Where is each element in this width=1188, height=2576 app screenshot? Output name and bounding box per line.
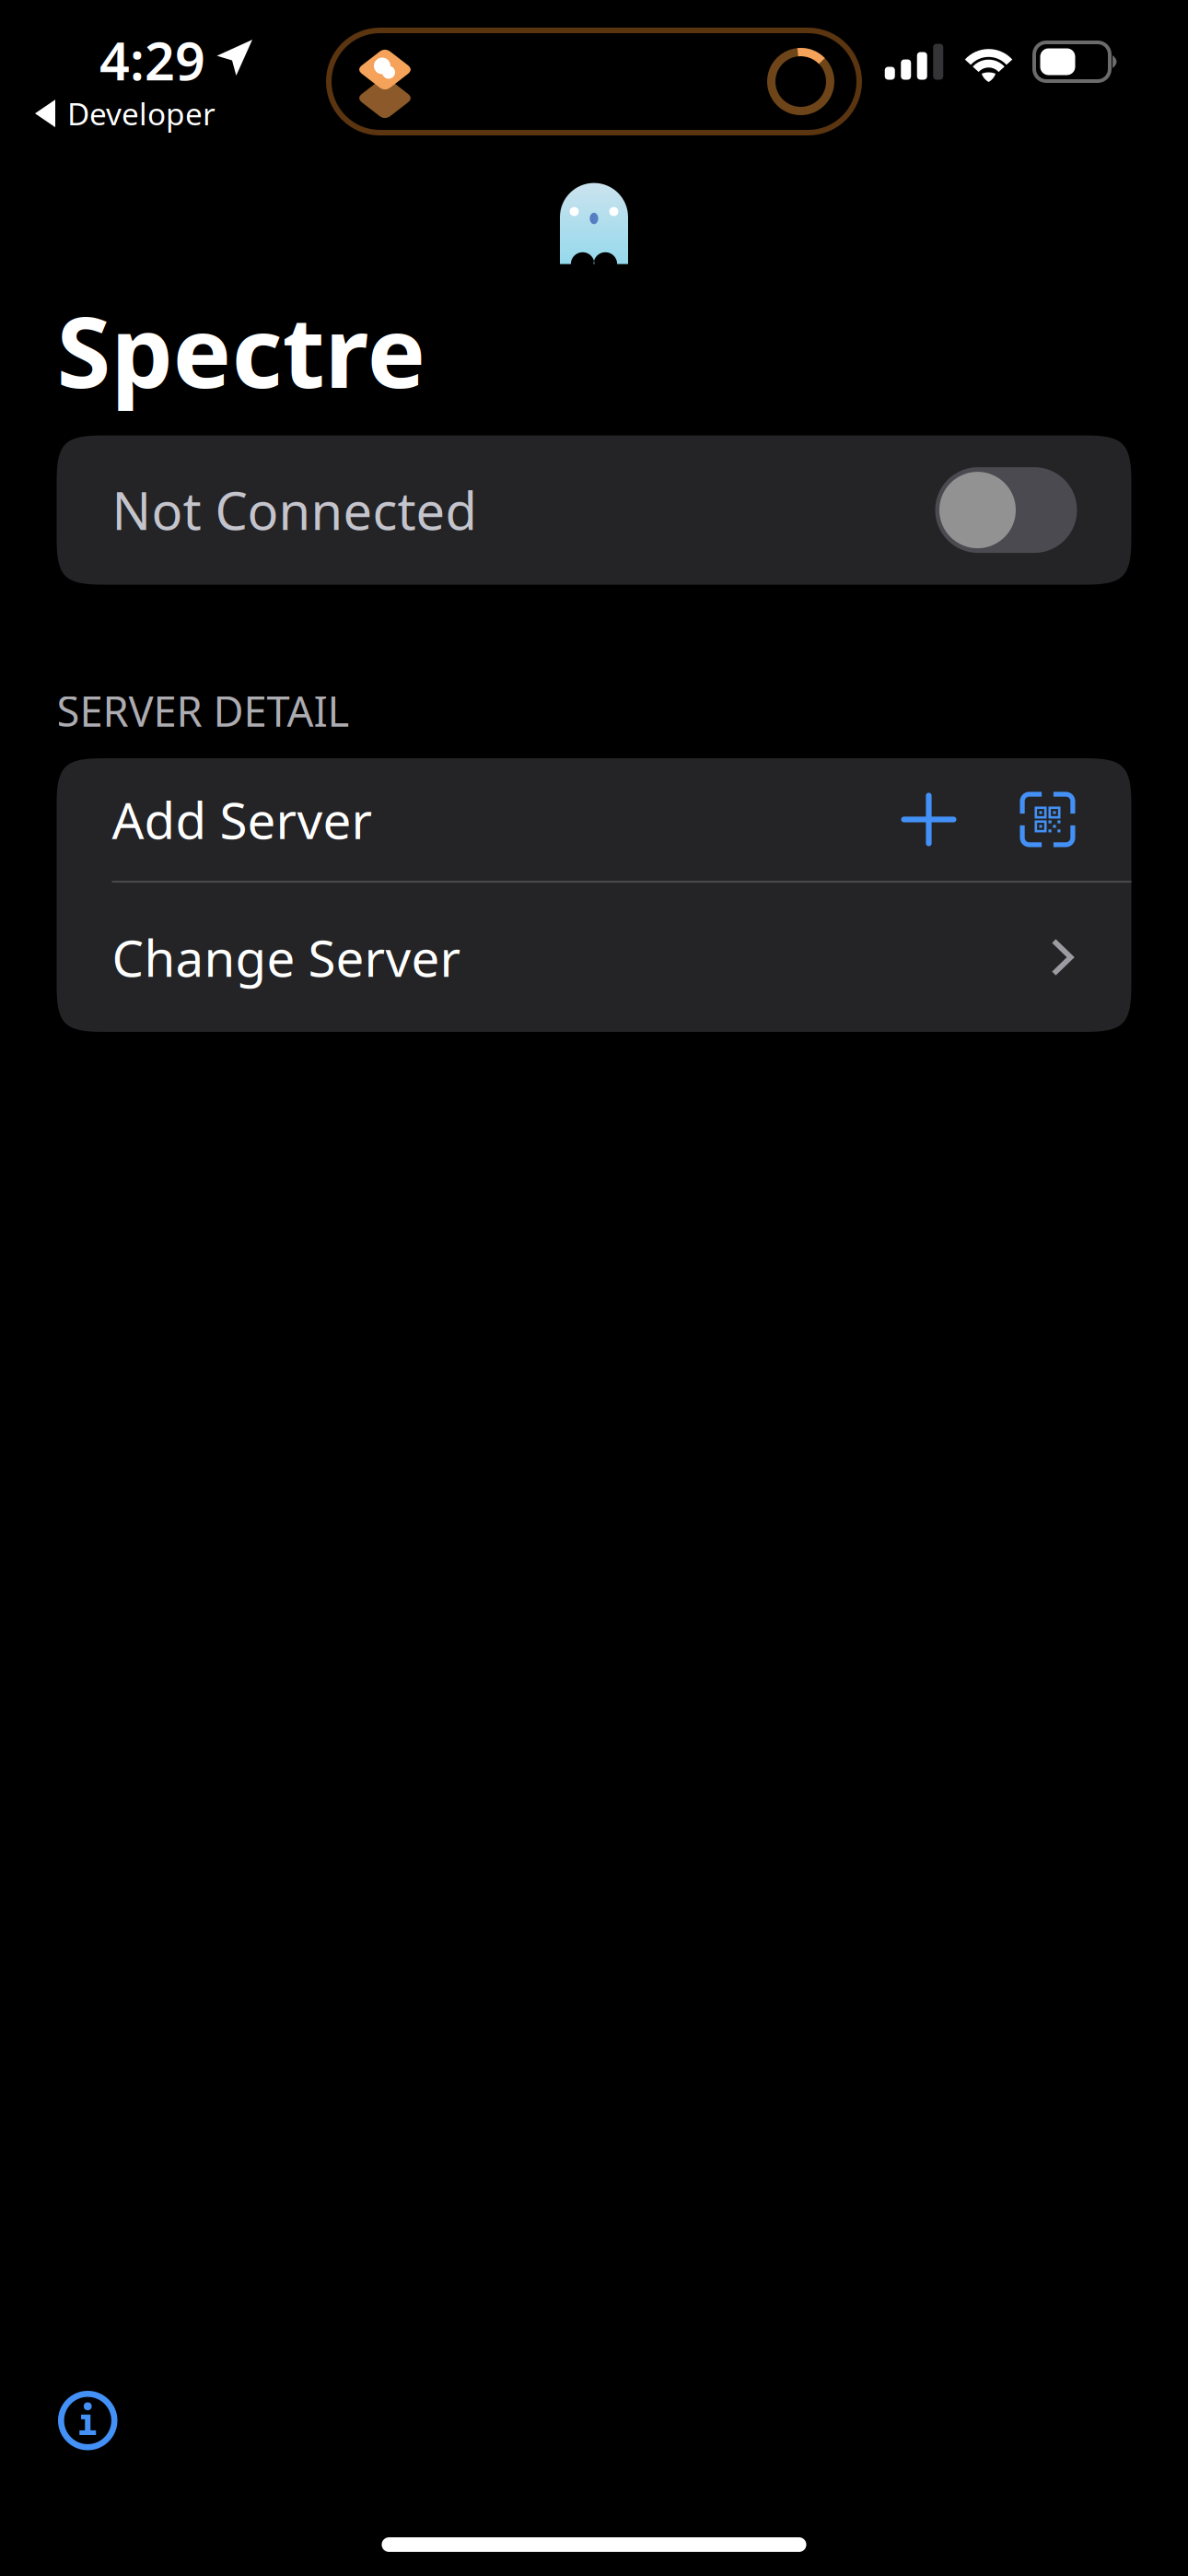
button[interactable]: Not Connected [57,435,1131,585]
staticText: Change Server [112,924,461,991]
staticText: Not Connected [112,476,477,544]
staticText: Spectre [57,285,426,415]
button[interactable]: Change Server [57,883,1131,1032]
staticText: Developer [67,93,215,134]
staticText: 4:29 [99,25,205,95]
staticText: Add Server [112,786,373,853]
staticText: SERVER DETAIL [57,683,349,738]
button[interactable]: About [28,2360,148,2481]
button[interactable]: Add Server [57,758,1131,881]
